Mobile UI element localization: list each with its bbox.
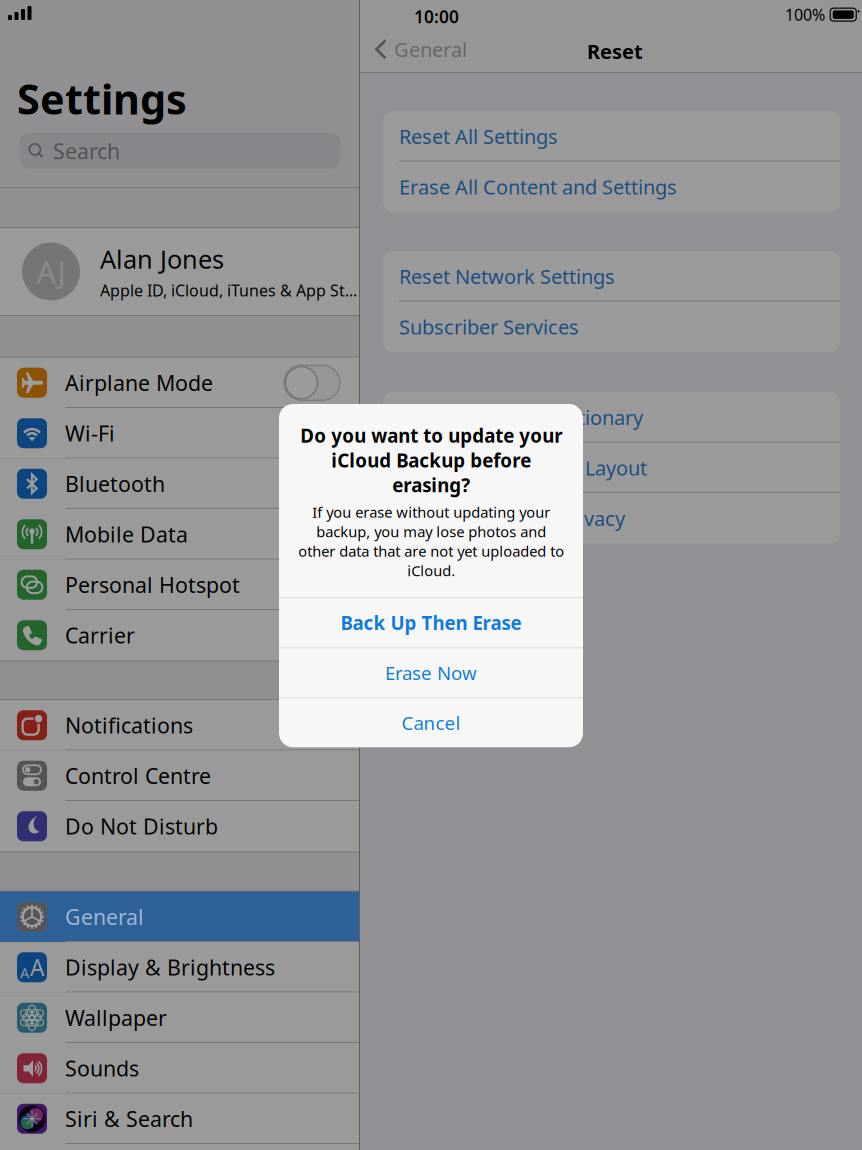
staticText: Settings (17, 71, 187, 126)
staticText: Reset Location & Privacy (399, 505, 625, 532)
staticText: Apple ID, iCloud, iTunes & App St... (100, 280, 357, 301)
staticText: Reset Network Settings (399, 263, 615, 290)
button[interactable]: Search (20, 133, 340, 169)
staticText: Cancel (401, 710, 460, 735)
button[interactable]: Erase Now (279, 648, 583, 697)
button[interactable]: Do Not Disturb (0, 801, 359, 851)
staticText: Notifications (65, 711, 193, 739)
staticText: Control Centre (65, 762, 211, 790)
staticText: Erase Now (385, 660, 477, 685)
staticText: Reset Keyboard Dictionary (399, 404, 643, 431)
button[interactable]: Bluetooth (0, 458, 359, 509)
staticText: General (394, 36, 467, 63)
button[interactable]: Carrier (0, 610, 359, 660)
button[interactable]: Personal Hotspot (0, 559, 359, 610)
button[interactable]: Reset Keyboard Dictionary (383, 392, 840, 442)
staticText: Mobile Data (65, 520, 188, 548)
button[interactable]: AJ (0, 228, 359, 315)
button[interactable]: Mobile Data (0, 509, 359, 559)
button[interactable]: Control Centre (0, 750, 359, 801)
staticText: A (30, 952, 44, 982)
staticText: Carrier (65, 621, 135, 649)
button[interactable]: Reset All Settings (383, 111, 840, 161)
staticText: Alan Jones (100, 242, 224, 276)
staticText: Erase All Content and Settings (399, 173, 677, 200)
staticText: Display & Brightness (65, 953, 275, 981)
button[interactable]: Airplane Mode (0, 357, 359, 408)
button[interactable]: Reset Home Screen Layout (383, 442, 840, 493)
staticText: Personal Hotspot (65, 571, 240, 599)
staticText: AJ (36, 251, 65, 292)
button[interactable]: Sounds (0, 1043, 359, 1093)
button[interactable]: Erase All Content and Settings (383, 161, 840, 212)
staticText: Reset All Settings (399, 123, 558, 150)
staticText: Reset Home Screen Layout (399, 454, 647, 481)
button[interactable]: Reset Location & Privacy (383, 493, 840, 543)
button[interactable]: General (360, 27, 481, 72)
button[interactable]: Wi-Fi (0, 408, 359, 458)
staticText: Wallpaper (65, 1004, 167, 1032)
button[interactable]: Siri & Search (0, 1093, 359, 1144)
staticText: Back Up Then Erase (340, 610, 521, 635)
staticText: Bluetooth (65, 470, 165, 498)
staticText: Do Not Disturb (65, 812, 218, 840)
staticText: Do you want to update your iCloud Backup… (300, 423, 562, 497)
staticText: If you erase without updating your backu… (298, 502, 564, 580)
staticText: Search (53, 137, 120, 165)
button[interactable]: Subscriber Services (383, 301, 840, 352)
button[interactable]: Notifications (0, 700, 359, 750)
button[interactable]: Back Up Then Erase (279, 598, 583, 647)
button[interactable]: General (0, 891, 359, 942)
staticText: General (65, 903, 144, 931)
button[interactable]: Cancel (279, 698, 583, 747)
staticText: Subscriber Services (399, 313, 579, 340)
staticText: 100% (785, 4, 825, 25)
staticText: Reset (587, 38, 643, 65)
staticText: Airplane Mode (65, 369, 213, 397)
button[interactable]: Wallpaper (0, 992, 359, 1043)
button[interactable]: Reset Network Settings (383, 251, 840, 301)
button[interactable]: A (0, 942, 359, 992)
staticText: Sounds (65, 1054, 139, 1082)
staticText: Wi-Fi (65, 419, 115, 447)
staticText: A (20, 963, 29, 982)
staticText: 10:00 (414, 5, 459, 28)
staticText: Siri & Search (65, 1105, 193, 1133)
